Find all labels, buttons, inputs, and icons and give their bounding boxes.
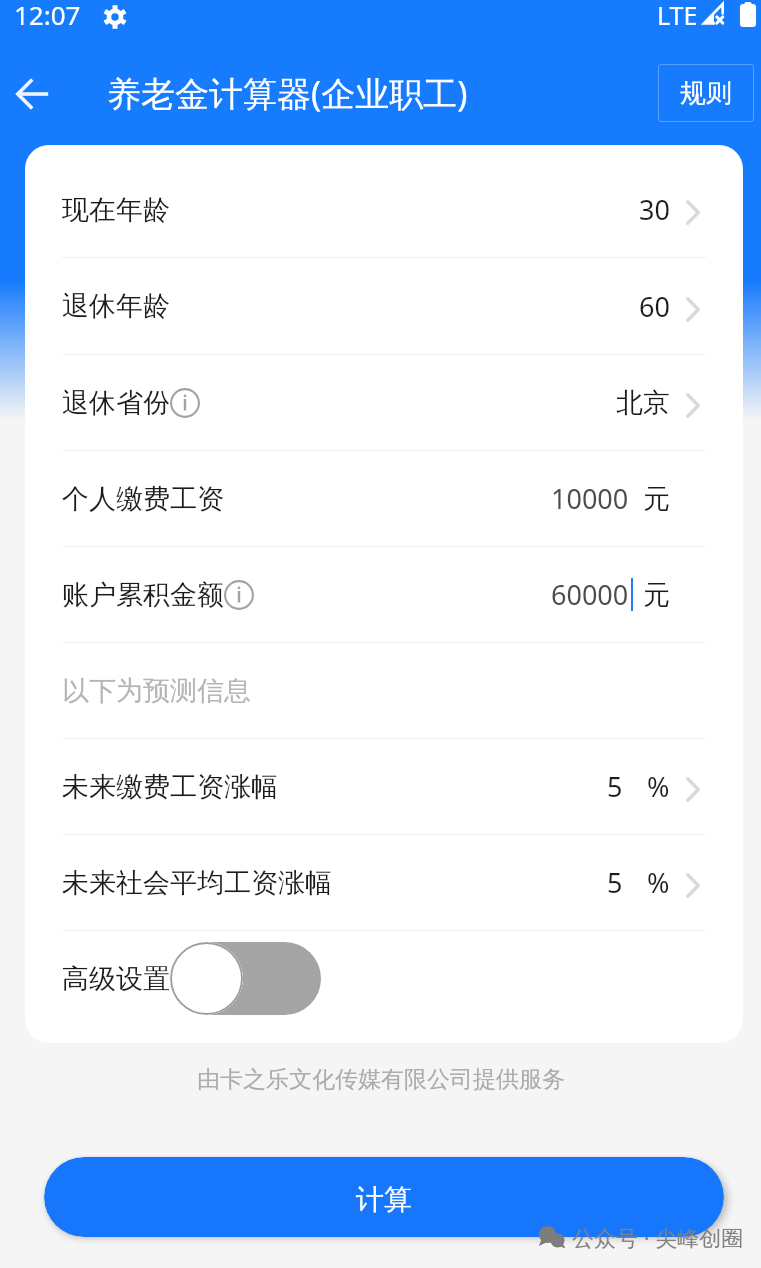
staticText: 10000: [551, 480, 629, 517]
button[interactable]: Back: [7, 68, 59, 120]
staticText: 5: [607, 864, 623, 901]
staticText: LTE: [657, 0, 698, 32]
staticText: 养老金计算器(企业职工): [107, 70, 468, 116]
staticText: 以下为预测信息: [62, 674, 251, 708]
staticText: 60000: [551, 576, 629, 613]
staticText: 由卡之乐文化传媒有限公司提供服务: [197, 1065, 565, 1094]
staticText: 北京: [616, 386, 670, 420]
button[interactable]: Advanced settings toggle: [170, 942, 321, 1015]
staticText: 公众号 · 尖峰创圈: [572, 1222, 744, 1252]
staticText: 未来社会平均工资涨幅: [62, 866, 332, 900]
staticText: 30: [639, 191, 670, 228]
button[interactable]: 规则: [658, 64, 754, 122]
staticText: 高级设置: [62, 962, 170, 996]
button[interactable]: 未来缴费工资涨幅: [62, 739, 706, 834]
staticText: 规则: [680, 77, 732, 110]
staticText: 5: [607, 768, 623, 805]
staticText: 60: [639, 288, 670, 325]
staticText: 计算: [356, 1182, 412, 1217]
button[interactable]: 现在年龄: [62, 162, 706, 257]
button[interactable]: 个人缴费工资: [62, 451, 706, 546]
staticText: 个人缴费工资: [62, 482, 224, 516]
button[interactable]: 退休年龄: [62, 258, 706, 354]
button[interactable]: 账户累积金额: [62, 547, 706, 642]
button[interactable]: 退休省份: [62, 355, 706, 450]
staticText: 12:07: [14, 0, 81, 32]
staticText: %: [647, 768, 670, 805]
button[interactable]: 未来社会平均工资涨幅: [62, 835, 706, 930]
staticText: 账户累积金额: [62, 578, 224, 612]
staticText: 现在年龄: [62, 193, 170, 227]
staticText: 未来缴费工资涨幅: [62, 770, 278, 804]
staticText: 元: [643, 482, 670, 516]
staticText: 元: [643, 578, 670, 612]
staticText: %: [647, 864, 670, 901]
button[interactable]: 计算: [44, 1157, 724, 1237]
staticText: 退休省份: [62, 386, 170, 420]
staticText: 退休年龄: [62, 289, 170, 323]
